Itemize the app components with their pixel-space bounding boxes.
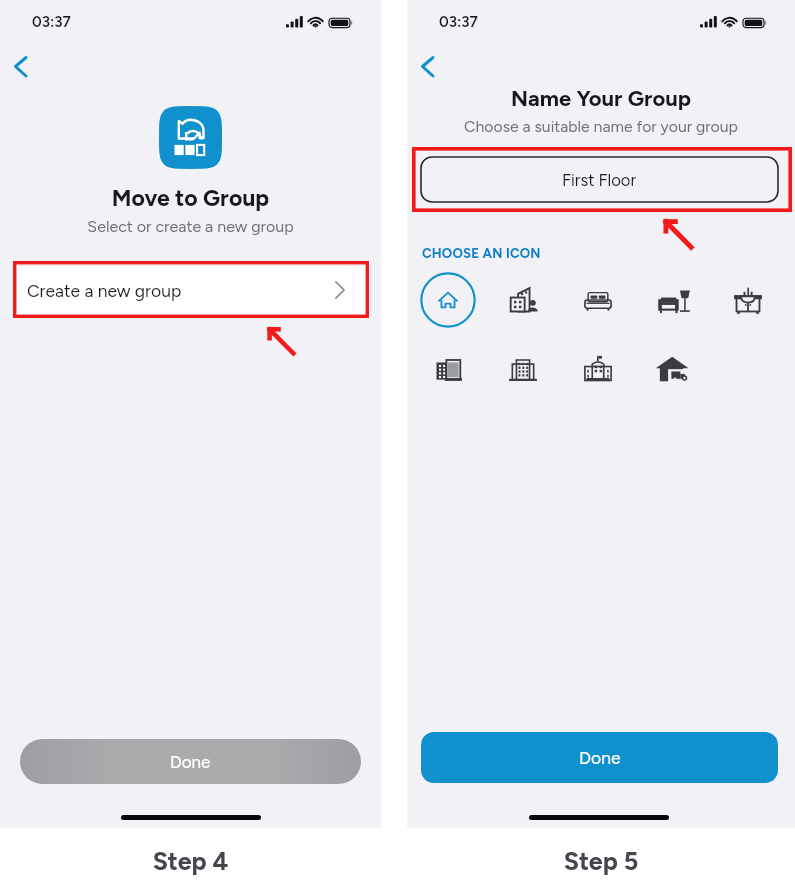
staticText: Move to Group bbox=[0, 184, 381, 212]
staticText: Name Your Group bbox=[407, 85, 795, 111]
button[interactable]: Create a new group bbox=[17, 266, 367, 314]
staticText: CHOOSE AN ICON bbox=[422, 245, 541, 261]
button[interactable]: Done bbox=[20, 739, 361, 784]
button[interactable]: Office bbox=[493, 270, 553, 330]
staticText: Select or create a new group bbox=[0, 217, 381, 236]
staticText: Done bbox=[579, 747, 621, 768]
button[interactable]: Home bbox=[418, 270, 478, 330]
staticText: Done bbox=[170, 752, 211, 772]
button[interactable]: First Floor bbox=[421, 157, 778, 202]
button[interactable]: Done bbox=[421, 732, 778, 783]
staticText: Step 5 bbox=[407, 846, 795, 876]
staticText: Create a new group bbox=[27, 280, 182, 301]
button[interactable]: Living room bbox=[643, 270, 703, 330]
button[interactable]: Bedroom bbox=[568, 270, 628, 330]
button[interactable]: Apartments bbox=[418, 339, 478, 399]
button[interactable]: Building bbox=[493, 339, 553, 399]
staticText: 03:37 bbox=[439, 13, 478, 31]
button[interactable]: Hotel bbox=[568, 339, 628, 399]
staticText: 03:37 bbox=[32, 13, 71, 31]
button[interactable]: Warehouse bbox=[643, 339, 703, 399]
staticText: Step 4 bbox=[0, 846, 381, 876]
staticText: First Floor bbox=[562, 170, 637, 190]
button[interactable]: Bathroom bbox=[718, 270, 778, 330]
button[interactable]: Back bbox=[411, 47, 449, 85]
button[interactable]: Back bbox=[4, 47, 42, 85]
staticText: Choose a suitable name for your group bbox=[407, 117, 795, 136]
